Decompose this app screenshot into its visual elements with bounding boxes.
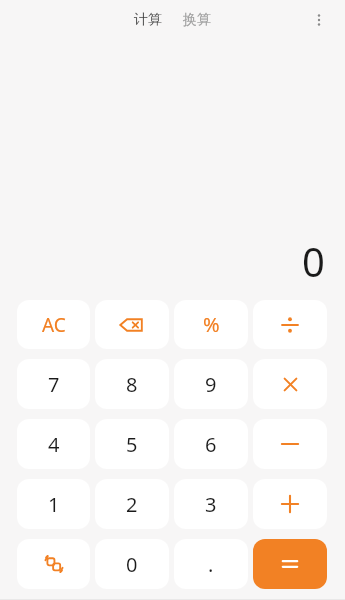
button[interactable]: AC xyxy=(17,300,90,349)
button[interactable]: Minus xyxy=(253,419,327,469)
button[interactable]: Unit converter xyxy=(17,539,90,589)
staticText: 1 xyxy=(48,491,60,518)
button[interactable]: 8 xyxy=(95,359,169,409)
staticText: 9 xyxy=(205,371,217,398)
staticText: . xyxy=(208,551,214,578)
button[interactable]: Divide xyxy=(253,300,327,349)
staticText: 6 xyxy=(205,431,217,458)
staticText: 4 xyxy=(48,431,60,458)
staticText: 0 xyxy=(302,234,325,288)
button[interactable]: Percent xyxy=(174,300,248,349)
staticText: 7 xyxy=(48,371,60,398)
button[interactable]: Backspace xyxy=(95,300,169,349)
staticText: AC xyxy=(42,312,66,338)
button[interactable]: 4 xyxy=(17,419,90,469)
button[interactable]: 2 xyxy=(95,479,169,529)
button[interactable]: Decimal point xyxy=(174,539,248,589)
button[interactable]: More options xyxy=(302,3,336,37)
staticText: 8 xyxy=(126,371,138,398)
staticText: 5 xyxy=(126,431,138,458)
staticText: 0 xyxy=(126,551,138,578)
button[interactable]: 7 xyxy=(17,359,90,409)
button[interactable]: Plus xyxy=(253,479,327,529)
staticText: 换算 xyxy=(183,11,211,29)
staticText: 3 xyxy=(205,491,217,518)
button[interactable]: 换算 xyxy=(177,7,217,33)
button[interactable]: 5 xyxy=(95,419,169,469)
button[interactable]: Equals xyxy=(253,539,327,589)
button[interactable]: 1 xyxy=(17,479,90,529)
button[interactable]: 0 xyxy=(95,539,169,589)
staticText: % xyxy=(203,311,220,338)
button[interactable]: Multiply xyxy=(253,359,327,409)
button[interactable]: 9 xyxy=(174,359,248,409)
button[interactable]: 计算 xyxy=(128,7,168,33)
staticText: 计算 xyxy=(134,11,162,29)
staticText: 2 xyxy=(126,491,138,518)
button[interactable]: 3 xyxy=(174,479,248,529)
button[interactable]: 6 xyxy=(174,419,248,469)
